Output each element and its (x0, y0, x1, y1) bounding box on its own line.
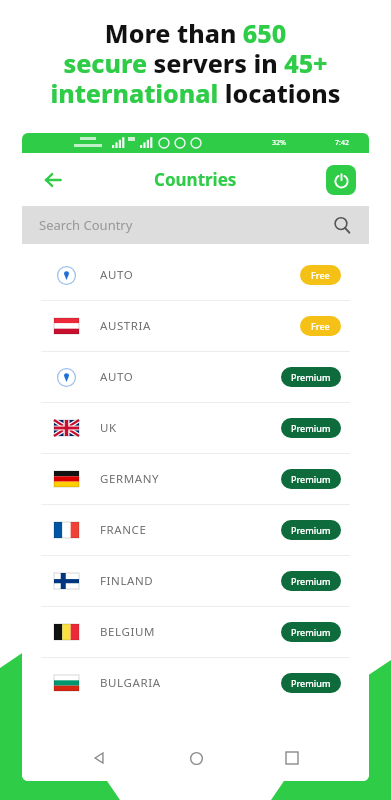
button[interactable]: Home (176, 738, 216, 778)
staticText: Free (311, 320, 330, 332)
staticText: BELGIUM (100, 624, 281, 640)
button[interactable]: Premium (281, 673, 341, 693)
staticText: More than 650 secure servers in 45+ inte… (10, 16, 381, 110)
button[interactable]: AUTO (36, 250, 355, 300)
button[interactable]: BELGIUM (36, 607, 355, 657)
button[interactable]: Premium (281, 571, 341, 591)
staticText: AUSTRIA (100, 318, 300, 334)
button[interactable]: Back (36, 163, 70, 197)
button[interactable]: Premium (281, 622, 341, 642)
staticText: 7:42 (335, 138, 349, 148)
staticText: Premium (291, 626, 331, 638)
button[interactable]: Premium (281, 418, 341, 438)
staticText: Premium (291, 371, 331, 383)
staticText: UK (100, 420, 281, 436)
staticText: Free (311, 269, 330, 281)
button[interactable]: Free (300, 265, 341, 285)
button[interactable]: Premium (281, 520, 341, 540)
button[interactable]: Search Country (22, 206, 369, 244)
staticText: Premium (291, 422, 331, 434)
button[interactable]: AUSTRIA (36, 301, 355, 351)
staticText: Countries (154, 168, 237, 191)
staticText: Search Country (39, 216, 333, 234)
staticText: AUTO (100, 267, 300, 283)
button[interactable]: Premium (281, 469, 341, 489)
staticText: FINLAND (100, 573, 281, 589)
button[interactable]: FINLAND (36, 556, 355, 606)
button[interactable]: AUTO (36, 352, 355, 402)
staticText: Premium (291, 677, 331, 689)
staticText: 32% (272, 138, 286, 148)
button[interactable]: GERMANY (36, 454, 355, 504)
button[interactable]: BULGARIA (36, 658, 355, 708)
button[interactable]: Power (326, 165, 356, 195)
staticText: GERMANY (100, 471, 281, 487)
button[interactable]: Back (79, 738, 119, 778)
staticText: BULGARIA (100, 675, 281, 691)
button[interactable]: UK (36, 403, 355, 453)
staticText: Premium (291, 575, 331, 587)
staticText: FRANCE (100, 522, 281, 538)
button[interactable]: Free (300, 316, 341, 336)
staticText: Premium (291, 524, 331, 536)
button[interactable]: Premium (281, 367, 341, 387)
staticText: Premium (291, 473, 331, 485)
button[interactable]: Recents (272, 738, 312, 778)
staticText: AUTO (100, 369, 281, 385)
button[interactable]: FRANCE (36, 505, 355, 555)
